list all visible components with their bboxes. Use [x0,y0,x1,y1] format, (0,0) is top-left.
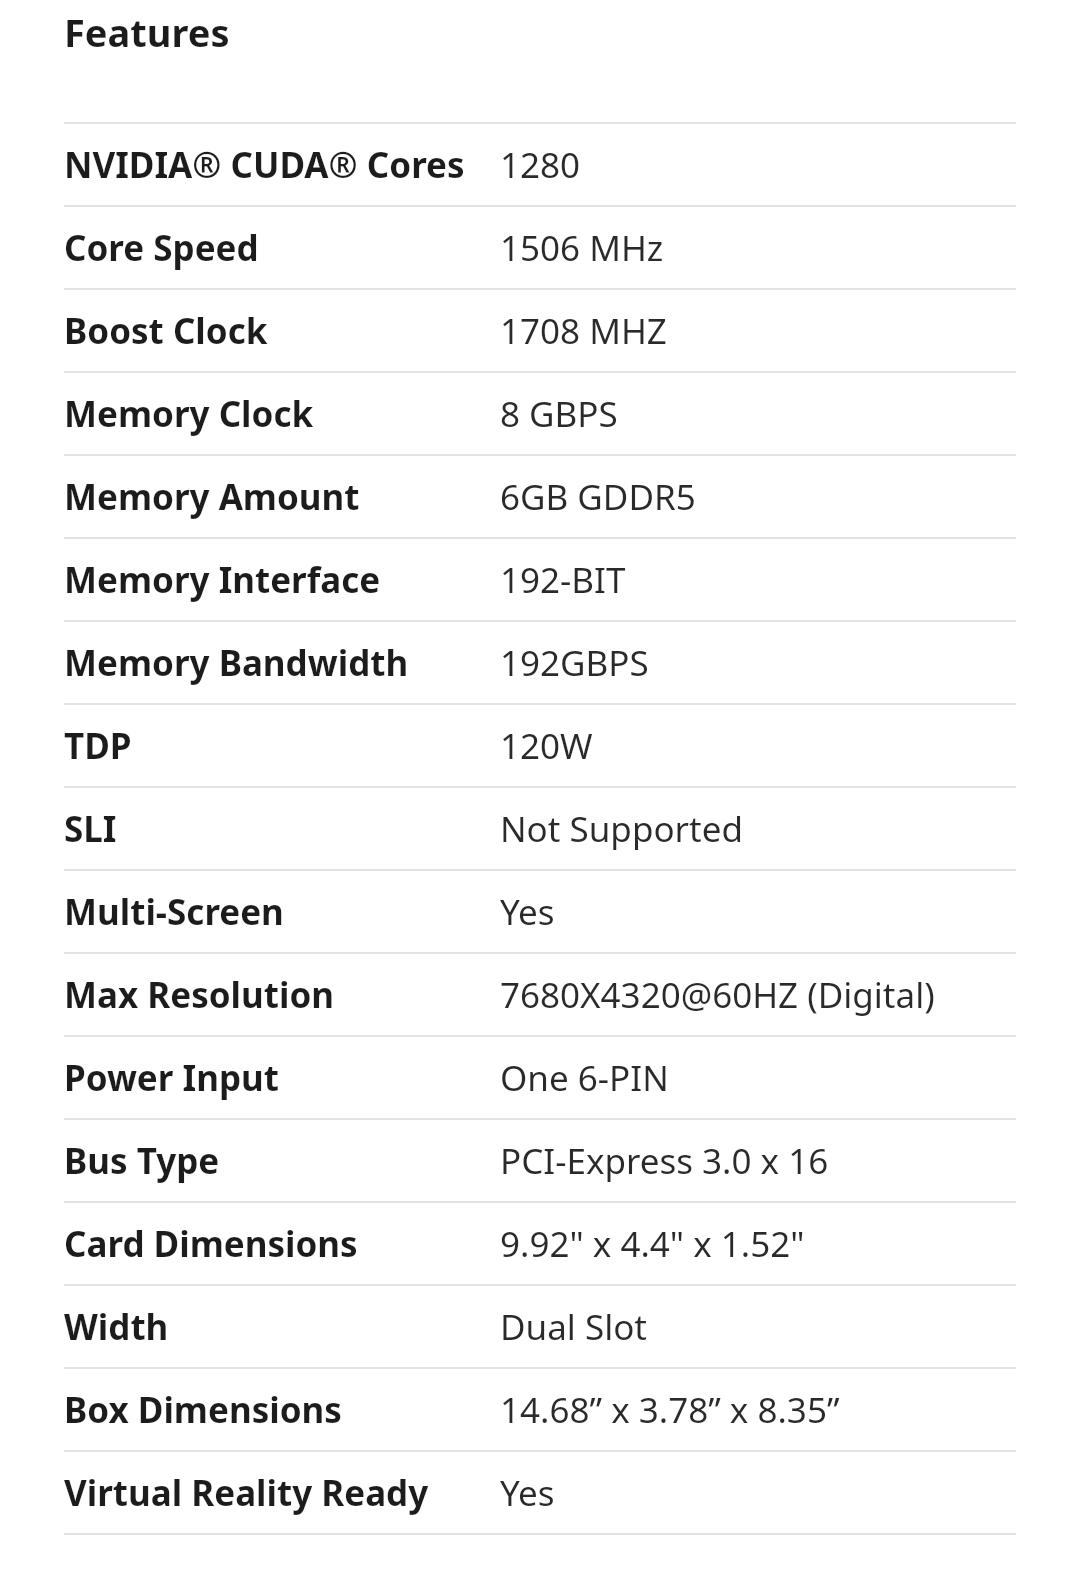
button[interactable]: NVIDIA® CUDA® Cores [64,124,1016,205]
staticText: 9.92" x 4.4" x 1.52" [500,1220,805,1268]
button[interactable]: Boost Clock [64,290,1016,371]
staticText: 120W [500,722,593,770]
button[interactable]: Max Resolution [64,954,1016,1035]
button[interactable]: Box Dimensions [64,1369,1016,1450]
button[interactable]: Memory Clock [64,373,1016,454]
button[interactable]: Virtual Reality Ready [64,1452,1016,1533]
staticText: Multi-Screen [64,888,500,936]
button[interactable]: Card Dimensions [64,1203,1016,1284]
staticText: Box Dimensions [64,1386,500,1434]
staticText: 6GB GDDR5 [500,473,696,521]
staticText: 1506 MHz [500,224,664,272]
staticText: 192GBPS [500,639,649,687]
staticText: 1280 [500,141,581,189]
staticText: Yes [500,888,555,936]
button[interactable]: Multi-Screen [64,871,1016,952]
staticText: 8 GBPS [500,390,618,438]
staticText: Card Dimensions [64,1220,500,1268]
staticText: Not Supported [500,805,743,853]
staticText: Core Speed [64,224,500,272]
staticText: Memory Bandwidth [64,639,500,687]
button[interactable]: Power Input [64,1037,1016,1118]
button[interactable]: Memory Interface [64,539,1016,620]
button[interactable]: Memory Amount [64,456,1016,537]
staticText: Boost Clock [64,307,500,355]
staticText: Yes [500,1469,555,1517]
button[interactable]: Bus Type [64,1120,1016,1201]
staticText: SLI [64,805,500,853]
staticText: 14.68” x 3.78” x 8.35” [500,1386,840,1434]
staticText: 7680X4320@60HZ (Digital) [500,971,935,1019]
staticText: One 6-PIN [500,1054,669,1102]
staticText: Memory Interface [64,556,500,604]
button[interactable]: Width [64,1286,1016,1367]
staticText: Power Input [64,1054,500,1102]
staticText: Virtual Reality Ready [64,1469,500,1517]
button[interactable]: Memory Bandwidth [64,622,1016,703]
staticText: PCI-Express 3.0 x 16 [500,1137,829,1185]
button[interactable]: Core Speed [64,207,1016,288]
staticText: Memory Clock [64,390,500,438]
staticText: Features [64,6,230,58]
staticText: Max Resolution [64,971,500,1019]
button[interactable]: SLI [64,788,1016,869]
button[interactable]: TDP [64,705,1016,786]
staticText: Width [64,1303,500,1351]
staticText: NVIDIA® CUDA® Cores [64,141,500,189]
staticText: 192-BIT [500,556,626,604]
staticText: Memory Amount [64,473,500,521]
staticText: Bus Type [64,1137,500,1185]
staticText: Dual Slot [500,1303,648,1351]
staticText: TDP [64,722,500,770]
staticText: 1708 MHZ [500,307,667,355]
